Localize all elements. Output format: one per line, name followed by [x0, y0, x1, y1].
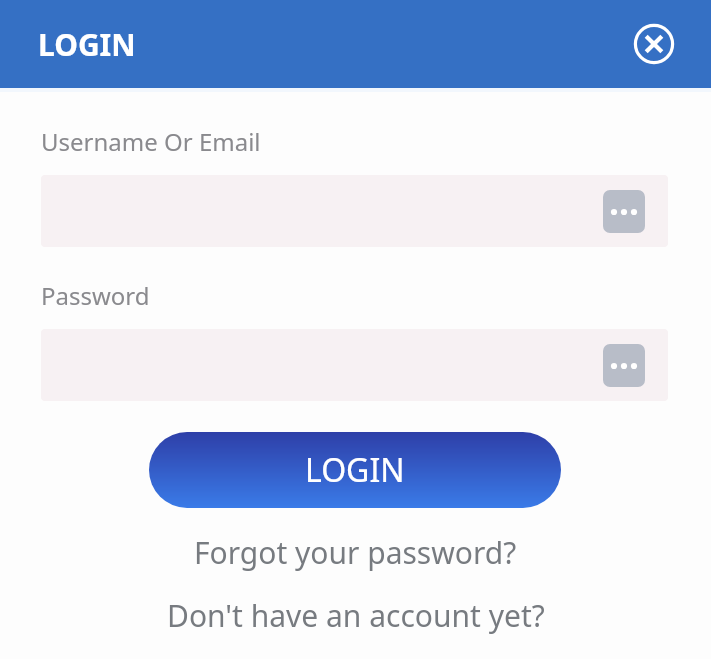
staticText: LOGIN	[305, 448, 405, 492]
button[interactable]: More options	[41, 175, 668, 247]
staticText: Don't have an account yet?	[167, 595, 545, 636]
button[interactable]: More options	[603, 344, 645, 387]
button[interactable]: LOGIN	[38, 24, 136, 65]
staticText: Forgot your password?	[194, 532, 517, 573]
button[interactable]: Close	[633, 23, 675, 65]
button[interactable]: More options	[41, 329, 668, 401]
button[interactable]: Forgot your password?	[0, 532, 711, 573]
button[interactable]: LOGIN	[149, 432, 561, 508]
button[interactable]: More options	[603, 190, 645, 233]
staticText: LOGIN	[38, 24, 136, 65]
staticText: Password	[41, 279, 150, 312]
button[interactable]: Don't have an account yet?	[0, 595, 711, 636]
staticText: Username Or Email	[41, 125, 261, 158]
